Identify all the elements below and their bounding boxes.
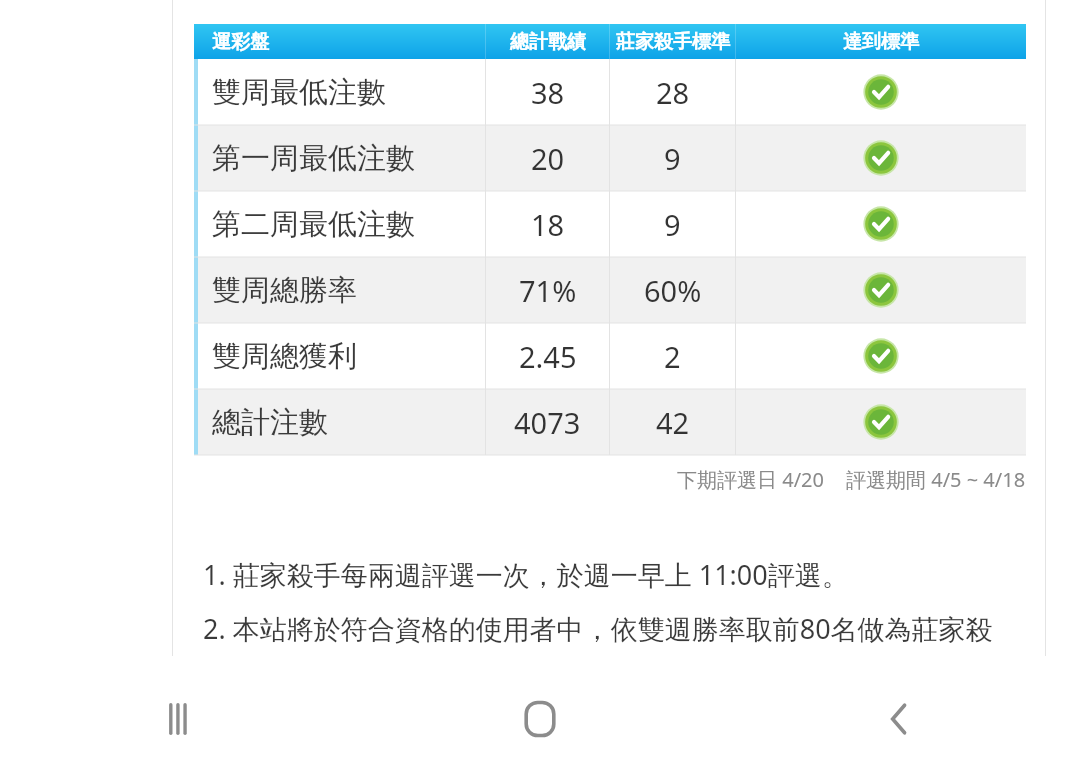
staticText: 42 <box>656 403 690 442</box>
button[interactable]: Recents <box>0 656 360 782</box>
staticText: 第二周最低注數 <box>212 206 415 243</box>
button[interactable]: 雙周總獲利 <box>194 323 1026 389</box>
staticText: 雙周總獲利 <box>212 338 357 375</box>
button[interactable]: 雙周最低注數 <box>194 59 1026 125</box>
staticText: 9 <box>664 205 681 244</box>
staticText: 18 <box>531 205 565 244</box>
staticText: 第一周最低注數 <box>212 140 415 177</box>
button[interactable]: 雙周總勝率 <box>194 257 1026 323</box>
staticText: 雙周總勝率 <box>212 272 357 309</box>
button[interactable]: Back <box>720 656 1080 782</box>
staticText: 2.45 <box>519 337 577 376</box>
staticText: 運彩盤 <box>212 30 269 54</box>
staticText: 9 <box>664 139 681 178</box>
staticText: 雙周最低注數 <box>212 74 386 111</box>
staticText: 2. 本站將於符合資格的使用者中，依雙週勝率取前80名做為莊家殺 <box>203 610 993 647</box>
staticText: 60% <box>644 271 702 310</box>
staticText: 下期評選日 4/20 <box>677 466 824 493</box>
other: 達到標準 <box>863 74 899 110</box>
staticText: 評選期間 4/5 ~ 4/18 <box>846 466 1026 493</box>
other: 達到標準 <box>863 404 899 440</box>
button[interactable]: Home <box>360 656 720 782</box>
button[interactable]: 總計注數 <box>194 389 1026 455</box>
staticText: 38 <box>531 73 565 112</box>
other: 達到標準 <box>863 140 899 176</box>
staticText: 總計注數 <box>212 404 328 441</box>
other: 達到標準 <box>863 272 899 308</box>
button[interactable]: 第二周最低注數 <box>194 191 1026 257</box>
staticText: 4073 <box>514 403 581 442</box>
other: 達到標準 <box>863 206 899 242</box>
button[interactable]: 第一周最低注數 <box>194 125 1026 191</box>
staticText: 1. 莊家殺手每兩週評選一次，於週一早上 11:00評選。 <box>203 556 849 593</box>
staticText: 總計戰績 <box>510 30 586 54</box>
staticText: 28 <box>656 73 690 112</box>
staticText: 達到標準 <box>843 30 919 54</box>
staticText: 2 <box>664 337 681 376</box>
staticText: 71% <box>519 271 577 310</box>
other: 達到標準 <box>863 338 899 374</box>
staticText: 莊家殺手標準 <box>616 30 730 54</box>
staticText: 20 <box>531 139 565 178</box>
